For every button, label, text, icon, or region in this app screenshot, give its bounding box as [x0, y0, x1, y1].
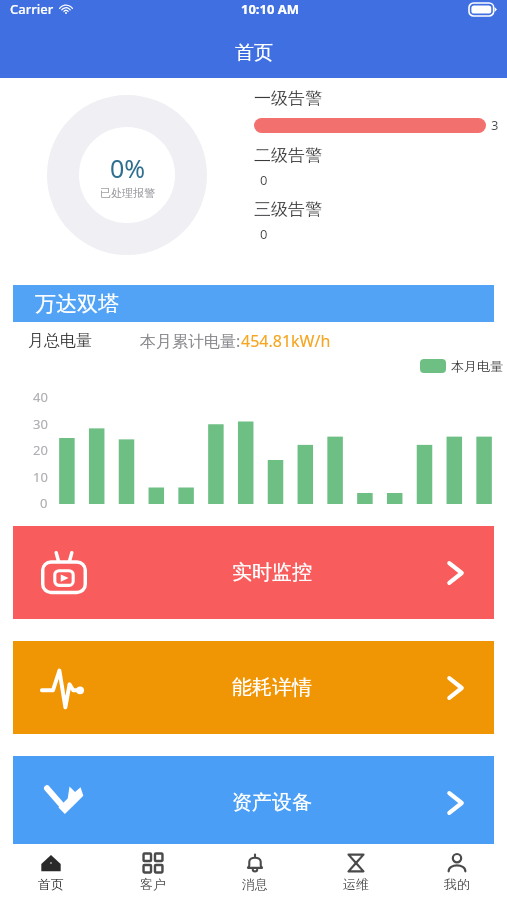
staticText: 已处理报警 [100, 186, 155, 200]
staticText: 30 [33, 415, 48, 433]
staticText: 0 [40, 494, 48, 512]
button[interactable]: 消息 [204, 844, 305, 900]
staticText: 0 [260, 225, 268, 243]
staticText: 资产设备 [232, 790, 312, 815]
button[interactable]: 首页 [0, 844, 102, 900]
staticText: 二级告警 [254, 145, 322, 166]
staticText: 10:10 AM [241, 0, 300, 18]
staticText: 一级告警 [254, 88, 322, 109]
staticText: 三级告警 [254, 199, 322, 220]
staticText: 首页 [235, 41, 273, 65]
button[interactable]: 客户 [102, 844, 204, 900]
staticText: 运维 [343, 876, 369, 892]
button[interactable]: 能耗详情 [13, 641, 494, 734]
staticText: 0% [110, 151, 146, 185]
button[interactable]: 万达双塔 [13, 285, 494, 322]
staticText: 10 [33, 468, 48, 486]
other: 实时监控 [442, 560, 468, 586]
staticText: 454.81kW/h [241, 330, 331, 352]
staticText: 20 [33, 441, 48, 459]
button[interactable]: 实时监控 [13, 526, 494, 619]
staticText: 实时监控 [232, 560, 312, 585]
button[interactable]: 资产设备 [13, 756, 494, 849]
staticText: Carrier [10, 0, 54, 18]
staticText: 首页 [38, 876, 64, 892]
staticText: 月总电量 [28, 331, 92, 351]
staticText: 我的 [444, 876, 470, 892]
staticText: 本月电量 [451, 358, 503, 374]
other: 资产设备 [442, 790, 468, 816]
button[interactable]: 我的 [406, 844, 507, 900]
staticText: 40 [33, 388, 48, 406]
button[interactable]: 运维 [305, 844, 406, 900]
staticText: 本月累计电量: [140, 330, 241, 352]
staticText: 万达双塔 [35, 291, 119, 317]
staticText: 3 [491, 116, 499, 134]
staticText: 消息 [242, 876, 268, 892]
other: 能耗详情 [442, 675, 468, 701]
staticText: 0 [260, 171, 268, 189]
staticText: 能耗详情 [232, 675, 312, 700]
staticText: 客户 [140, 876, 166, 892]
